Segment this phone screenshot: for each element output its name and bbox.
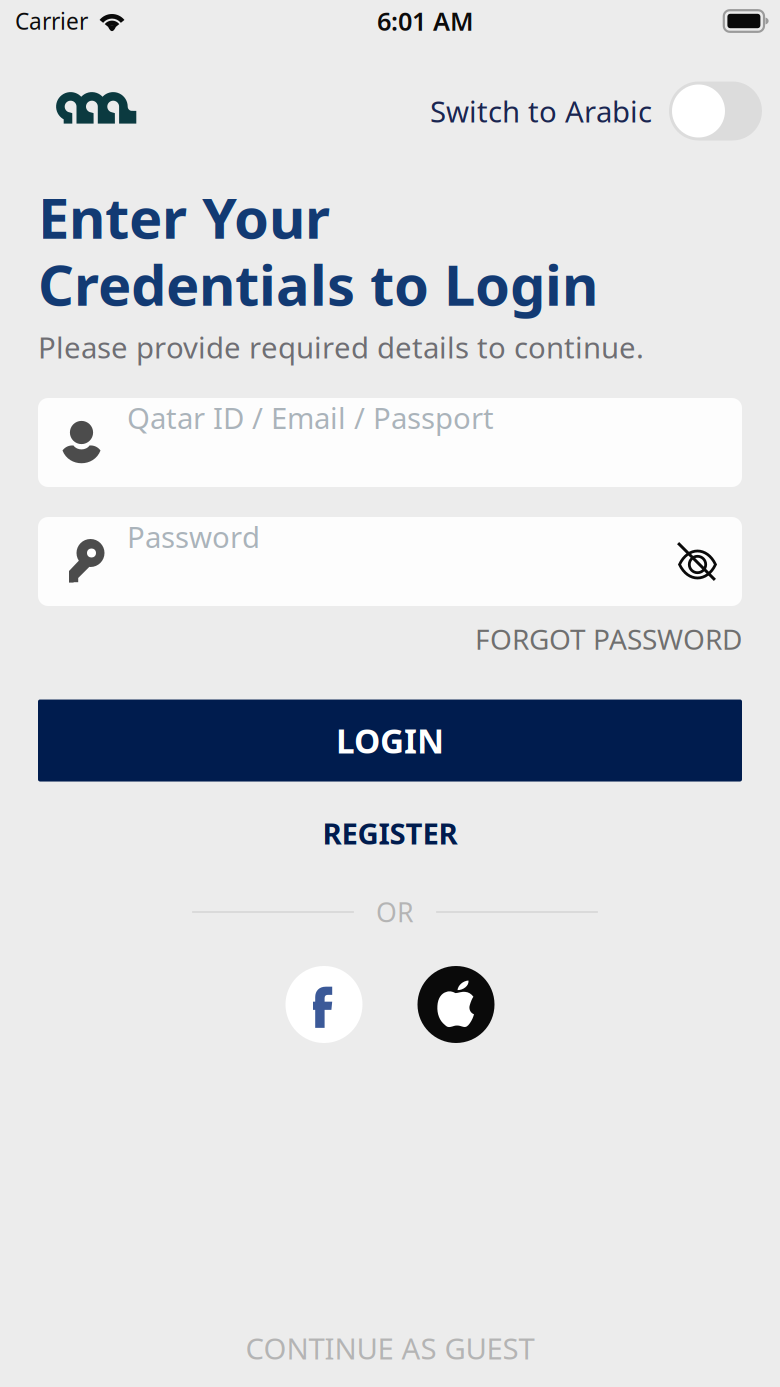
staticText: REGISTER (322, 813, 457, 852)
button[interactable]: Password (38, 517, 742, 606)
button[interactable]: LOGIN (38, 699, 742, 781)
staticText: Password (127, 517, 260, 556)
button[interactable]: REGISTER (38, 805, 742, 861)
staticText: Enter Your (38, 180, 330, 254)
staticText: Switch to Arabic (430, 91, 652, 130)
staticText: LOGIN (336, 718, 444, 763)
staticText: OR (376, 894, 414, 930)
button[interactable]: FORGOT PASSWORD (442, 617, 742, 661)
staticText: Please provide required details to conti… (38, 327, 644, 366)
staticText: Carrier (15, 6, 88, 36)
button[interactable]: Qatar ID / Email / Passport (38, 398, 742, 487)
button[interactable]: Sign in with Facebook (285, 966, 362, 1043)
staticText: FORGOT PASSWORD (475, 620, 742, 658)
button[interactable]: Switch to Arabic (430, 81, 762, 141)
button[interactable]: CONTINUE AS GUEST (0, 1316, 780, 1380)
button[interactable]: Home (56, 92, 146, 128)
button[interactable]: Sign in with Apple (417, 966, 494, 1043)
staticText: 6:01 AM (377, 4, 474, 38)
staticText: Qatar ID / Email / Passport (127, 398, 494, 437)
staticText: Credentials to Login (38, 247, 598, 321)
staticText: CONTINUE AS GUEST (245, 1328, 534, 1367)
